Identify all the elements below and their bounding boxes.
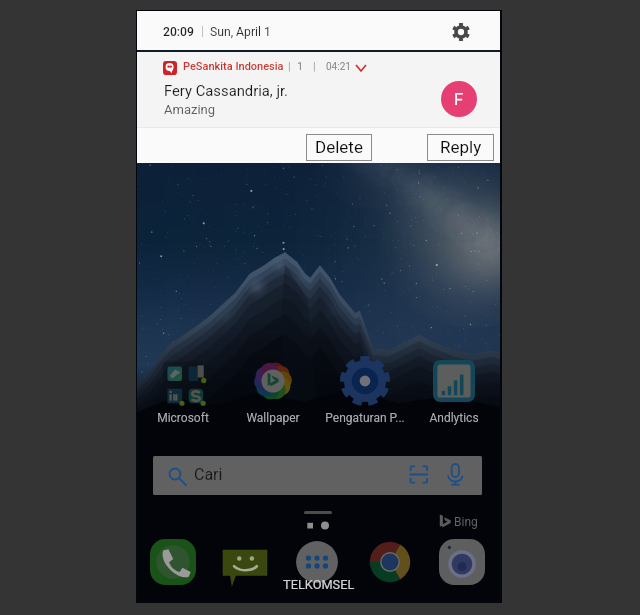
staticText: TELKOMSEL (283, 577, 355, 592)
other: Bing (439, 514, 452, 529)
staticText: Amazing (164, 102, 216, 117)
staticText: 1 (297, 60, 304, 73)
button[interactable] (148, 360, 218, 436)
staticText: | (288, 60, 291, 73)
staticText: Wallpaper (218, 411, 328, 427)
button[interactable]: Cari (153, 456, 482, 495)
button[interactable]: Delete (306, 134, 372, 161)
staticText: Bing (454, 515, 478, 529)
staticText: Pengaturan P... (310, 411, 420, 427)
button[interactable] (330, 360, 400, 436)
staticText: 20:09 (163, 25, 194, 39)
button[interactable]: Chrome (367, 539, 413, 591)
staticText: PeSankita Indonesia (183, 60, 284, 73)
staticText: 04:21 (326, 61, 351, 73)
button[interactable]: Settings (452, 23, 470, 41)
button[interactable]: Apps (294, 539, 340, 591)
staticText: Fery Cassandria, jr. (164, 82, 289, 99)
button[interactable]: Camera (439, 539, 485, 591)
staticText: Delete (315, 137, 363, 157)
staticText: Microsoft (137, 411, 238, 427)
button[interactable] (238, 360, 308, 436)
staticText: Sun, April 1 (210, 25, 271, 39)
staticText: | (313, 60, 316, 73)
staticText: F (454, 89, 464, 109)
other: Home screen pages (305, 520, 335, 532)
staticText: Andlytics (399, 411, 500, 427)
button[interactable]: Phone (150, 539, 196, 591)
button[interactable]: Messages (222, 539, 268, 591)
button[interactable]: PeSankita Indonesia (137, 52, 500, 127)
staticText: Reply (440, 137, 482, 157)
button[interactable]: Reply (427, 134, 494, 161)
button[interactable] (419, 360, 489, 436)
staticText: Cari (194, 465, 223, 484)
